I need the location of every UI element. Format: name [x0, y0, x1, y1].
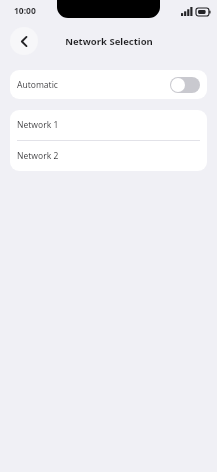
staticText: Network 2 [17, 150, 59, 162]
button[interactable]: Automatic [10, 70, 207, 99]
staticText: 10:00 [14, 5, 36, 17]
staticText: Network Selection [65, 35, 153, 48]
button[interactable]: Network 2 [10, 141, 207, 171]
staticText: Automatic [17, 79, 58, 91]
button[interactable]: Network 1 [10, 110, 207, 140]
staticText: Network 1 [17, 119, 59, 131]
button[interactable]: Automatic toggle [170, 77, 200, 93]
button[interactable]: Back [10, 27, 38, 55]
